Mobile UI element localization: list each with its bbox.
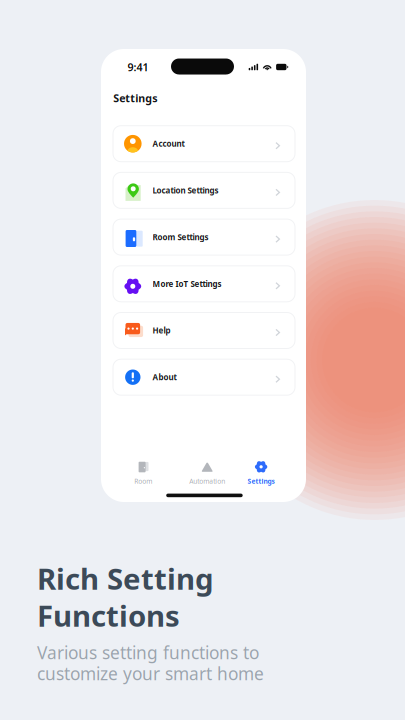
staticText: Room Settings	[153, 232, 209, 242]
staticText: 9:41	[127, 60, 148, 74]
button[interactable]: More IoT Settings	[113, 266, 295, 302]
staticText: Functions	[37, 596, 180, 635]
button[interactable]: Room	[115, 458, 171, 488]
staticText: Various setting functions to	[37, 641, 259, 664]
staticText: Rich Setting	[37, 559, 214, 598]
staticText: Help	[153, 325, 171, 336]
staticText: Room	[134, 477, 152, 486]
staticText: Account	[153, 138, 185, 149]
button[interactable]: Automation	[179, 458, 235, 488]
staticText: About	[153, 372, 177, 382]
button[interactable]: Settings	[233, 458, 289, 488]
staticText: Settings	[248, 477, 275, 486]
staticText: Location Settings	[153, 185, 219, 196]
staticText: Automation	[189, 477, 225, 486]
staticText: More IoT Settings	[153, 278, 222, 289]
button[interactable]: Help	[113, 312, 295, 348]
staticText: Settings	[113, 91, 157, 105]
button[interactable]: Account	[113, 126, 295, 162]
button[interactable]: About	[113, 359, 295, 395]
button[interactable]: Location Settings	[113, 172, 295, 208]
staticText: customize your smart home	[37, 662, 264, 685]
button[interactable]: Room Settings	[113, 219, 295, 255]
